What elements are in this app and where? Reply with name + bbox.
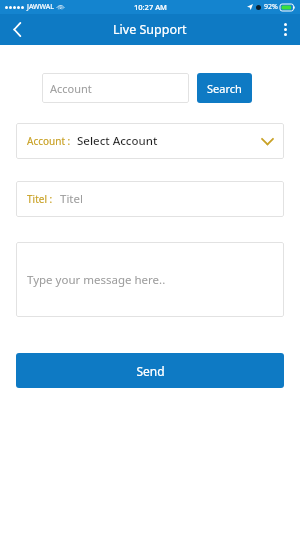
staticText: Live Support xyxy=(113,21,187,38)
button[interactable]: Account xyxy=(42,73,189,103)
button[interactable]: Type your message here.. xyxy=(16,242,284,317)
staticText: JAWWAL xyxy=(27,2,54,12)
staticText: Titel xyxy=(60,191,83,207)
staticText: 92% xyxy=(264,2,278,12)
button[interactable]: Titel : xyxy=(16,181,284,217)
staticText: 10:27 AM xyxy=(134,2,167,12)
staticText: Account xyxy=(50,81,92,96)
staticText: Search xyxy=(207,81,242,96)
button[interactable]: Account : xyxy=(16,123,284,159)
button[interactable]: Send xyxy=(16,353,284,388)
button[interactable]: Back xyxy=(0,14,34,45)
staticText: Type your message here.. xyxy=(27,272,166,288)
staticText: Account : xyxy=(27,134,71,148)
staticText: Send xyxy=(136,363,165,379)
button[interactable]: More options xyxy=(270,14,300,45)
staticText: Titel : xyxy=(27,192,53,206)
staticText: Select Account xyxy=(77,133,158,149)
button[interactable]: Search xyxy=(197,73,252,103)
